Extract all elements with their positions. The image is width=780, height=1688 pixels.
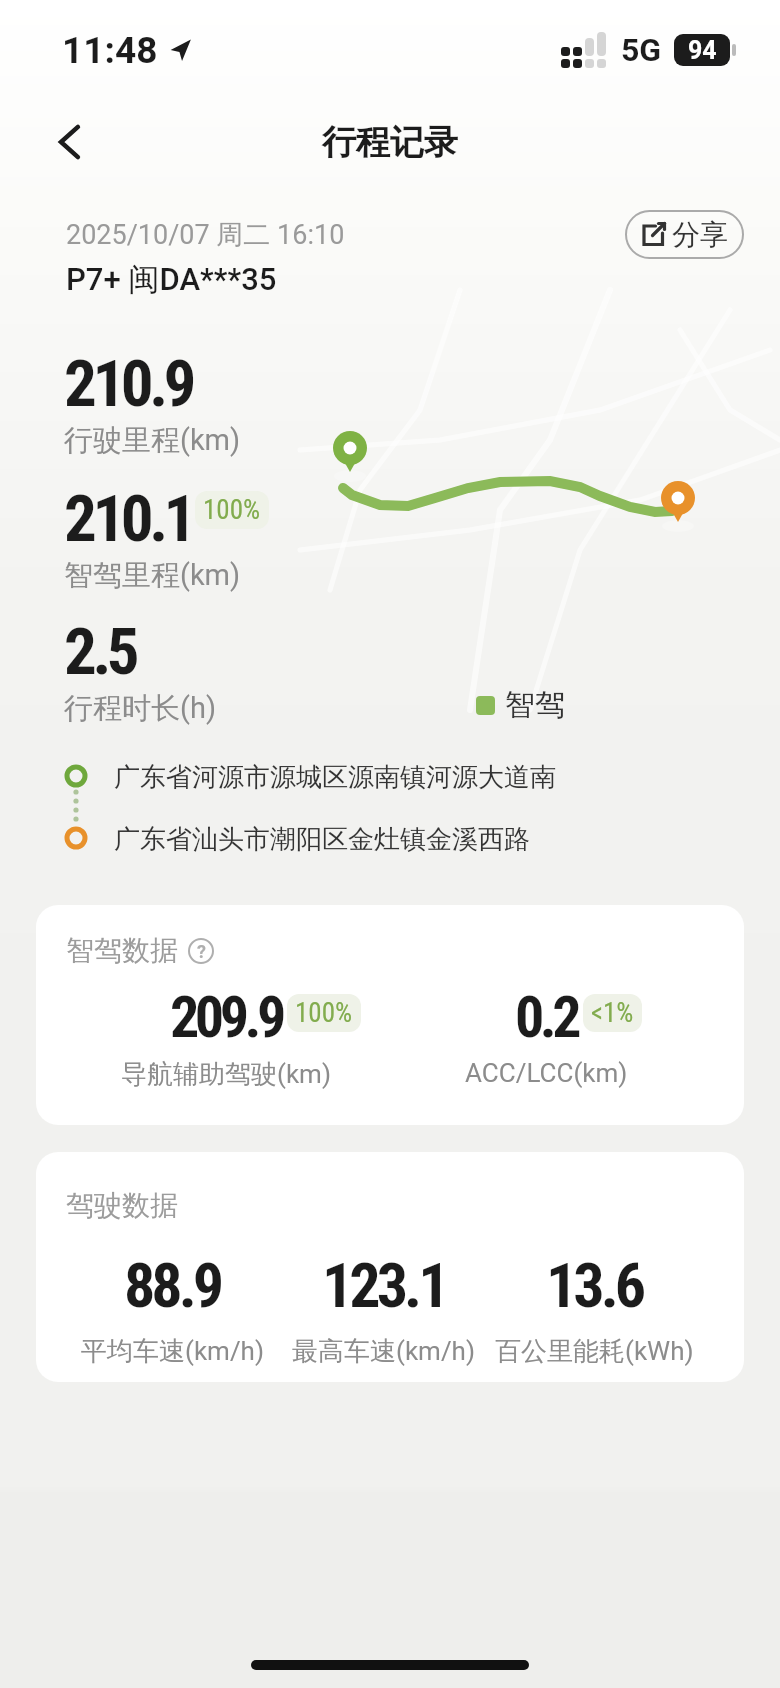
staticText: 5G: [621, 31, 662, 69]
staticText: 广东省河源市源城区源南镇河源大道南: [114, 761, 556, 794]
staticText: 0.2: [515, 983, 578, 1051]
button[interactable]: [52, 124, 88, 160]
staticText: 100%: [203, 494, 261, 526]
staticText: P7+ 闽DA***35: [66, 260, 277, 299]
staticText: 分享: [672, 217, 728, 252]
staticText: 行驶里程(km): [64, 422, 241, 459]
staticText: 210.9: [64, 346, 192, 422]
staticText: 广东省汕头市潮阳区金灶镇金溪西路: [114, 823, 530, 856]
button[interactable]: 分享: [625, 210, 744, 259]
staticText: 210.1: [64, 481, 192, 557]
staticText: 11:48: [62, 29, 158, 72]
staticText: 智驾里程(km): [64, 557, 241, 594]
staticText: ?: [197, 941, 206, 962]
staticText: 百公里能耗(kWh): [495, 1335, 694, 1368]
staticText: 2.5: [64, 614, 136, 690]
staticText: 209.9: [170, 983, 282, 1051]
staticText: <1%: [591, 997, 634, 1029]
staticText: 平均车速(km/h): [81, 1335, 264, 1368]
staticText: 最高车速(km/h): [292, 1335, 475, 1368]
staticText: 驾驶数据: [66, 1188, 178, 1223]
staticText: 13.6: [546, 1249, 643, 1322]
staticText: 2025/10/07 周二 16:10: [66, 218, 345, 252]
staticText: 100%: [295, 997, 353, 1029]
staticText: 导航辅助驾驶(km): [121, 1058, 331, 1091]
staticText: 智驾数据: [66, 933, 178, 968]
staticText: 123.1: [322, 1249, 446, 1322]
staticText: 88.9: [124, 1249, 221, 1322]
staticText: 94: [688, 36, 717, 65]
staticText: ACC/LCC(km): [465, 1058, 628, 1088]
staticText: 行程记录: [322, 121, 458, 164]
staticText: 智驾: [505, 686, 565, 724]
staticText: 行程时长(h): [64, 690, 216, 727]
